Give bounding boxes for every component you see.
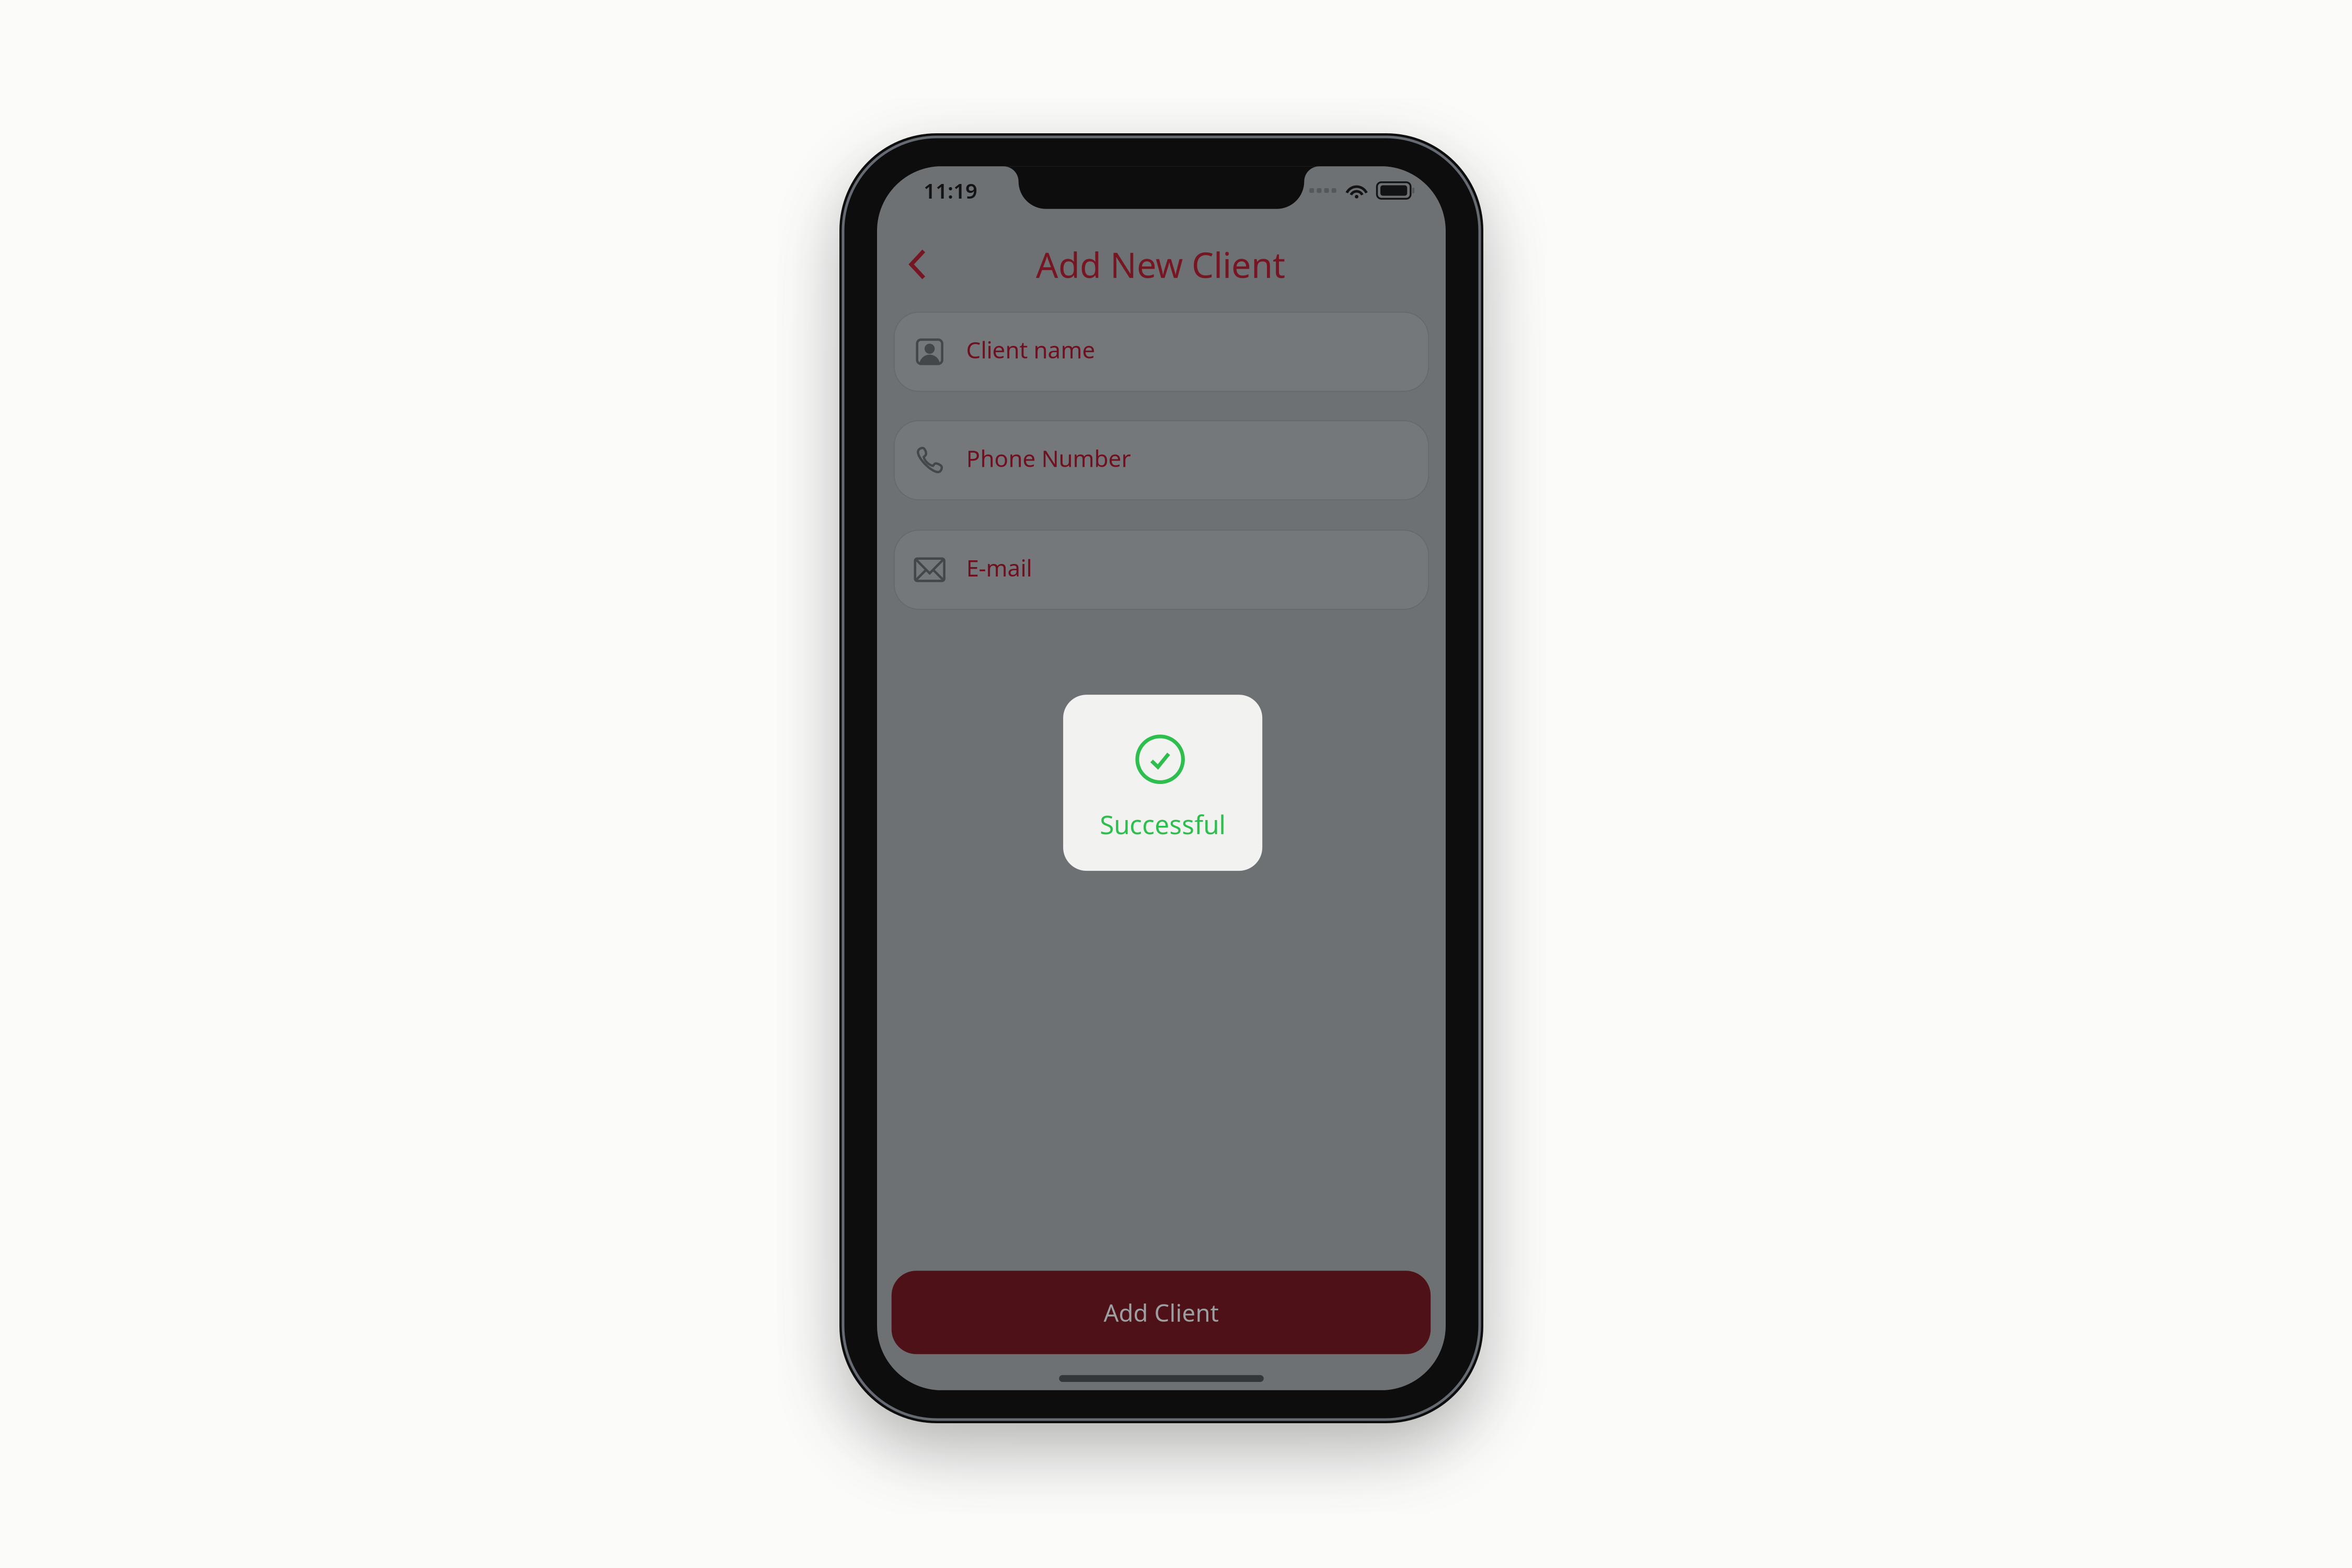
staticText: E-mail	[966, 552, 1032, 583]
staticText: Successful	[1100, 807, 1226, 841]
staticText: Add New Client	[1036, 241, 1285, 288]
button[interactable]: Phone Number	[894, 421, 1429, 500]
button[interactable]: Client name	[894, 312, 1429, 391]
button[interactable]: Back	[887, 234, 948, 295]
staticText: Add Client	[1104, 1297, 1219, 1328]
staticText: 11:19	[924, 177, 977, 204]
staticText: Phone Number	[966, 443, 1131, 473]
staticText: Client name	[966, 334, 1095, 365]
button[interactable]: E-mail	[894, 530, 1429, 609]
button[interactable]: Add Client	[892, 1271, 1431, 1354]
